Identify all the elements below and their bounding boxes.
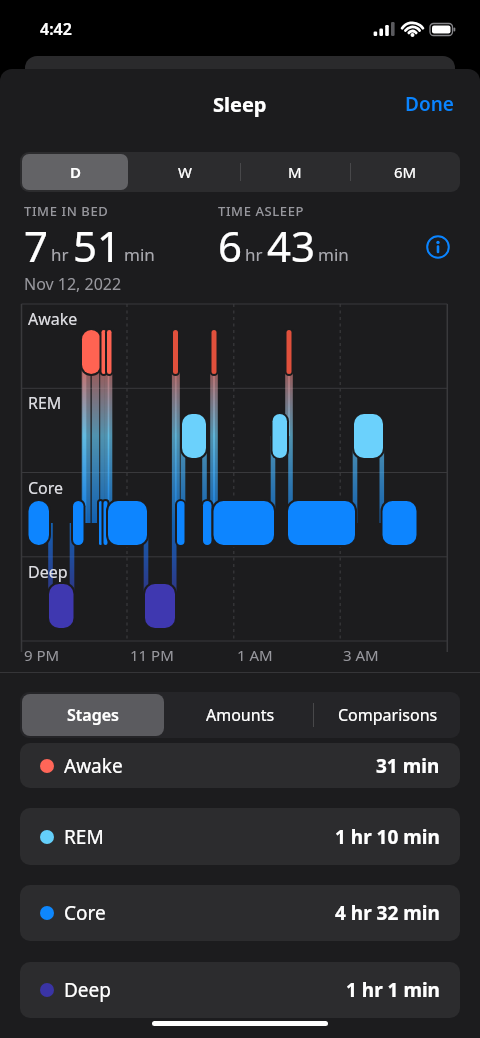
- staticText: hr: [51, 243, 69, 266]
- button[interactable]: Done: [396, 87, 462, 121]
- staticText: REM: [64, 824, 104, 850]
- staticText: D: [70, 162, 81, 182]
- staticText: M: [288, 162, 302, 182]
- staticText: hr: [245, 243, 263, 266]
- staticText: Sleep: [213, 91, 267, 117]
- staticText: Core: [64, 900, 106, 926]
- button[interactable]: D: [20, 152, 130, 192]
- button[interactable]: Stages: [22, 694, 164, 736]
- button[interactable]: Core: [20, 885, 460, 941]
- staticText: 7: [24, 217, 49, 274]
- staticText: 4:42: [40, 18, 72, 40]
- staticText: 1 hr 10 min: [335, 824, 440, 850]
- button[interactable]: M: [240, 152, 350, 192]
- button[interactable]: Awake: [20, 743, 460, 788]
- button[interactable]: W: [130, 152, 240, 192]
- staticText: min: [318, 243, 349, 266]
- staticText: TIME ASLEEP: [218, 202, 305, 220]
- button[interactable]: Deep: [20, 962, 460, 1018]
- staticText: min: [124, 243, 155, 266]
- staticText: W: [178, 162, 192, 182]
- staticText: 51: [73, 217, 122, 274]
- staticText: Comparisons: [338, 704, 438, 726]
- staticText: 31 min: [376, 753, 440, 779]
- staticText: 1 hr 1 min: [346, 977, 440, 1003]
- button[interactable]: Amounts: [170, 694, 310, 736]
- staticText: TIME IN BED: [24, 202, 109, 220]
- staticText: Nov 12, 2022: [24, 273, 122, 295]
- staticText: 11 PM: [130, 645, 174, 665]
- staticText: Awake: [64, 753, 123, 779]
- staticText: 9 PM: [24, 645, 60, 665]
- staticText: REM: [28, 392, 62, 414]
- staticText: 43: [267, 217, 316, 274]
- staticText: 1 AM: [237, 645, 273, 665]
- staticText: Awake: [28, 308, 78, 330]
- button[interactable]: REM: [20, 808, 460, 865]
- staticText: Deep: [64, 977, 111, 1003]
- staticText: Stages: [67, 704, 119, 726]
- staticText: 6M: [394, 162, 417, 182]
- button[interactable]: 6M: [350, 152, 460, 192]
- staticText: Amounts: [206, 704, 275, 726]
- button[interactable]: [424, 233, 452, 261]
- staticText: Core: [28, 477, 64, 499]
- staticText: Deep: [28, 561, 68, 583]
- staticText: Done: [405, 91, 454, 117]
- staticText: 4 hr 32 min: [335, 900, 440, 926]
- staticText: 3 AM: [343, 645, 379, 665]
- button[interactable]: Comparisons: [316, 694, 460, 736]
- staticText: 6: [218, 217, 243, 274]
